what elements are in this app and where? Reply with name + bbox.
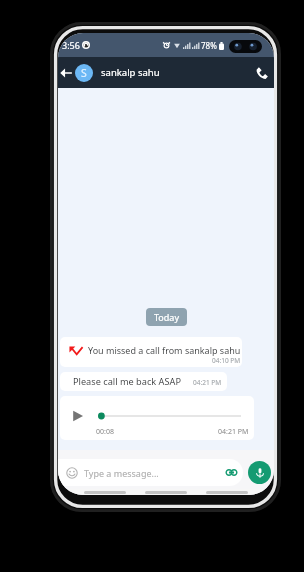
staticText: Today [154, 311, 179, 323]
staticText: 04:10 PM [212, 356, 241, 365]
button[interactable]: Today [146, 308, 187, 326]
button[interactable]: Play voice message [72, 410, 84, 422]
button[interactable]: Play voice message [60, 396, 254, 440]
staticText: 00:08 [96, 427, 114, 437]
button[interactable]: Back [59, 66, 73, 80]
button[interactable]: Navigation [84, 491, 126, 494]
button[interactable]: Record voice message [248, 461, 271, 484]
staticText: 04:21 PM [193, 378, 222, 387]
staticText: 04:21 PM [218, 427, 249, 437]
staticText: You missed a call from sankalp sahu [88, 344, 241, 356]
button[interactable]: Attach [226, 469, 237, 476]
button[interactable]: You missed a call from sankalp sahu [60, 337, 242, 367]
button[interactable]: Please call me back ASAP [60, 372, 227, 391]
staticText: Type a message... [84, 467, 159, 479]
staticText: 3:56 [62, 39, 80, 51]
staticText: S [81, 66, 87, 80]
button[interactable]: Navigation [206, 491, 248, 494]
staticText: Please call me back ASAP [73, 375, 181, 388]
button[interactable]: Navigation [145, 491, 187, 494]
button[interactable]: Type a message... [58, 459, 243, 486]
staticText: 78% [201, 40, 217, 51]
button[interactable]: Profile photo [75, 64, 93, 82]
button[interactable]: Call [251, 62, 273, 84]
staticText: sankalp sahu [101, 66, 160, 79]
